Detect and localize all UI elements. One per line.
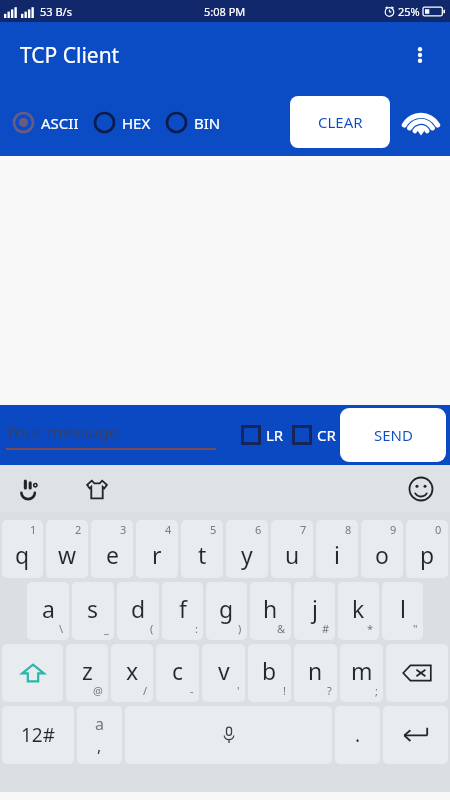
staticText: j xyxy=(312,593,318,624)
staticText: , xyxy=(97,735,102,757)
staticText: ' xyxy=(237,683,240,698)
staticText: ! xyxy=(283,683,286,698)
button[interactable]: More options xyxy=(398,33,442,77)
staticText: 1 xyxy=(30,522,37,537)
staticText: 0 xyxy=(435,522,442,537)
staticText: c xyxy=(172,655,184,686)
staticText: @ xyxy=(93,683,103,698)
button[interactable]: k xyxy=(338,582,379,640)
staticText: k xyxy=(352,593,365,624)
button[interactable]: x xyxy=(111,644,153,702)
staticText: w xyxy=(58,539,77,570)
button[interactable]: a xyxy=(77,706,122,764)
staticText: l xyxy=(400,593,406,624)
staticText: ? xyxy=(327,683,332,698)
staticText: 5:08 PM xyxy=(204,4,246,19)
staticText: 8 xyxy=(345,522,352,537)
staticText: 5 xyxy=(210,522,217,537)
button[interactable]: f xyxy=(162,582,203,640)
staticText: n xyxy=(308,655,323,686)
staticText: r xyxy=(152,539,162,570)
button[interactable]: . xyxy=(335,706,380,764)
button[interactable]: d xyxy=(117,582,159,640)
button[interactable]: 5 xyxy=(181,520,223,578)
staticText: ASCII xyxy=(41,113,79,133)
button[interactable]: 6 xyxy=(226,520,268,578)
button[interactable]: Theme xyxy=(80,472,114,506)
button[interactable]: 4 xyxy=(136,520,178,578)
button[interactable]: g xyxy=(206,582,247,640)
staticText: ; xyxy=(375,683,378,698)
staticText: 25% xyxy=(398,4,420,19)
staticText: u xyxy=(285,539,300,570)
staticText: x xyxy=(126,655,139,686)
button[interactable]: 1 xyxy=(2,520,43,578)
staticText: 3 xyxy=(120,522,127,537)
staticText: f xyxy=(179,593,187,624)
button[interactable]: s xyxy=(72,582,114,640)
staticText: 7 xyxy=(300,522,307,537)
button[interactable]: 3 xyxy=(91,520,133,578)
button[interactable]: 9 xyxy=(361,520,403,578)
staticText: y xyxy=(241,539,253,570)
staticText: SEND xyxy=(374,425,413,445)
staticText: \ xyxy=(59,621,64,636)
button[interactable]: c xyxy=(156,644,199,702)
button[interactable]: h xyxy=(250,582,291,640)
staticText: : xyxy=(195,621,198,636)
button[interactable]: CR xyxy=(290,419,338,451)
button[interactable]: n xyxy=(294,644,337,702)
staticText: z xyxy=(82,655,93,686)
button[interactable]: LR xyxy=(239,419,286,451)
staticText: e xyxy=(106,539,119,570)
button[interactable]: BIN xyxy=(161,105,225,140)
staticText: LR xyxy=(266,425,284,445)
staticText: CR xyxy=(317,425,336,445)
button[interactable] xyxy=(125,706,332,764)
staticText: / xyxy=(143,683,148,698)
staticText: a xyxy=(42,593,55,624)
button[interactable]: Shift xyxy=(2,644,63,702)
button[interactable]: 0 xyxy=(406,520,448,578)
staticText: & xyxy=(277,621,286,636)
button[interactable]: HEX xyxy=(89,105,155,140)
staticText: 53 B/s xyxy=(40,4,72,19)
staticText: - xyxy=(190,683,194,698)
staticText: o xyxy=(375,539,389,570)
button[interactable]: Emoji xyxy=(404,472,438,506)
staticText: Your message xyxy=(6,420,119,443)
button[interactable]: 7 xyxy=(271,520,313,578)
button[interactable]: Backspace xyxy=(386,644,448,702)
button[interactable]: Wi-Fi xyxy=(398,99,444,145)
button[interactable]: 2 xyxy=(46,520,88,578)
button[interactable]: l xyxy=(382,582,423,640)
button[interactable]: SEND xyxy=(340,408,446,462)
staticText: 12# xyxy=(21,722,56,748)
staticText: _ xyxy=(104,621,109,636)
staticText: 9 xyxy=(390,522,397,537)
staticText: " xyxy=(413,621,418,636)
button[interactable]: v xyxy=(202,644,245,702)
button[interactable]: Gesture input xyxy=(14,472,48,506)
staticText: g xyxy=(219,593,234,624)
button[interactable]: a xyxy=(27,582,69,640)
staticText: * xyxy=(367,621,374,636)
staticText: BIN xyxy=(194,113,221,133)
button[interactable]: m xyxy=(340,644,383,702)
button[interactable]: Your message xyxy=(6,420,216,450)
button[interactable]: Enter xyxy=(383,706,448,764)
staticText: . xyxy=(355,722,361,748)
button[interactable]: 12# xyxy=(2,706,74,764)
button[interactable]: CLEAR xyxy=(290,96,390,148)
button[interactable]: b xyxy=(248,644,291,702)
button[interactable]: 8 xyxy=(316,520,358,578)
button[interactable]: j xyxy=(294,582,335,640)
button[interactable]: ASCII xyxy=(8,105,83,140)
staticText: d xyxy=(131,593,146,624)
staticText: h xyxy=(263,593,278,624)
staticText: b xyxy=(262,655,277,686)
staticText: q xyxy=(15,539,30,570)
staticText: TCP Client xyxy=(20,41,120,70)
staticText: s xyxy=(87,593,99,624)
button[interactable]: z xyxy=(66,644,108,702)
